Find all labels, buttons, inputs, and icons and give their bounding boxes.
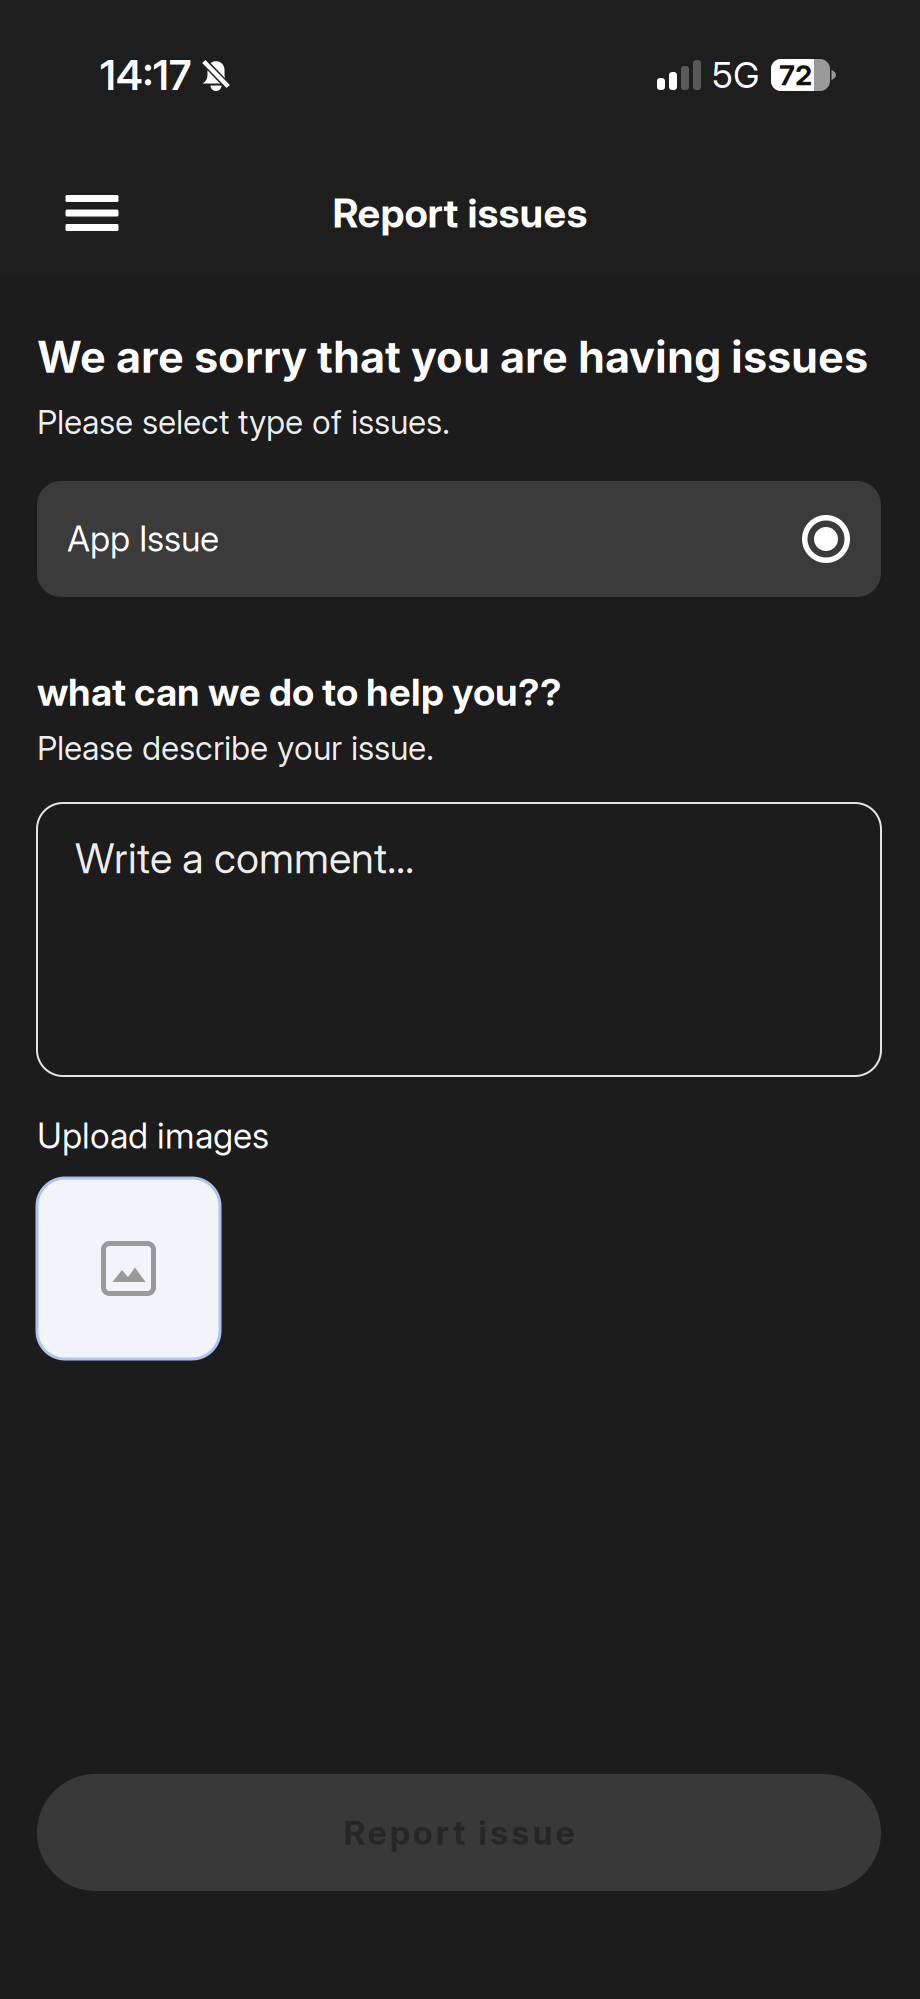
staticText: Report issues	[332, 189, 587, 237]
staticText: App Issue	[67, 518, 219, 560]
button[interactable]: Write a comment...	[37, 803, 881, 1076]
staticText: Report issue	[343, 1812, 575, 1853]
staticText: 72	[779, 58, 812, 92]
staticText: We are sorry that you are having issues	[37, 331, 868, 383]
staticText: 14:17	[100, 50, 191, 100]
staticText: Write a comment...	[75, 833, 414, 883]
button[interactable]: Menu	[37, 151, 147, 263]
button[interactable]: App Issue	[37, 481, 881, 597]
staticText: Upload images	[37, 1115, 269, 1157]
staticText: 5G	[712, 53, 759, 97]
button[interactable]: Report issue	[37, 1774, 881, 1891]
staticText: Please describe your issue.	[37, 728, 434, 768]
button[interactable]: Upload image	[37, 1178, 220, 1359]
staticText: Please select type of issues.	[37, 402, 450, 442]
staticText: what can we do to help you??	[37, 669, 562, 715]
